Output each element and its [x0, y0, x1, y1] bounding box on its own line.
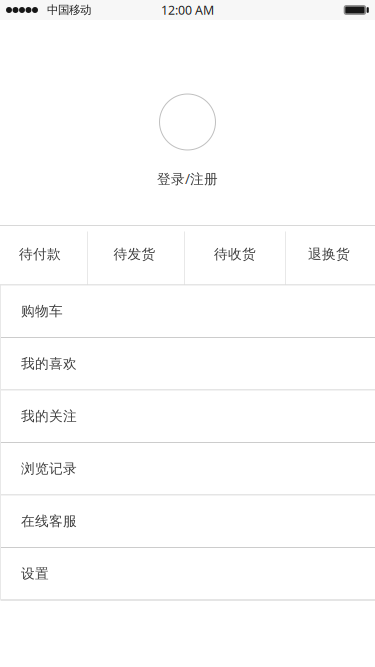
button[interactable]: 购物车 — [1, 285, 375, 338]
button[interactable]: 登录/注册 — [0, 20, 375, 225]
staticText: 待付款 — [19, 246, 61, 263]
staticText: 在线客服 — [21, 513, 77, 530]
button[interactable]: 我的关注 — [1, 390, 375, 443]
staticText: 设置 — [21, 565, 49, 582]
button[interactable]: 待发货 — [88, 226, 185, 284]
button[interactable]: 待付款 — [0, 226, 88, 284]
button[interactable]: 在线客服 — [1, 495, 375, 548]
staticText: 浏览记录 — [21, 460, 77, 477]
button[interactable]: 我的喜欢 — [1, 338, 375, 390]
staticText: 退换货 — [308, 246, 350, 263]
button[interactable]: 待收货 — [185, 226, 286, 284]
staticText: 登录/注册 — [157, 169, 218, 188]
staticText: 待发货 — [113, 246, 155, 263]
staticText: 待收货 — [214, 246, 256, 263]
staticText: 12:00 AM — [161, 2, 214, 18]
staticText: 购物车 — [21, 303, 63, 320]
staticText: 我的喜欢 — [21, 355, 77, 372]
button[interactable]: 浏览记录 — [1, 443, 375, 495]
staticText: 中国移动 — [47, 3, 91, 17]
button[interactable]: 设置 — [1, 548, 375, 600]
button[interactable]: 退换货 — [286, 226, 375, 284]
staticText: 我的关注 — [21, 408, 77, 425]
